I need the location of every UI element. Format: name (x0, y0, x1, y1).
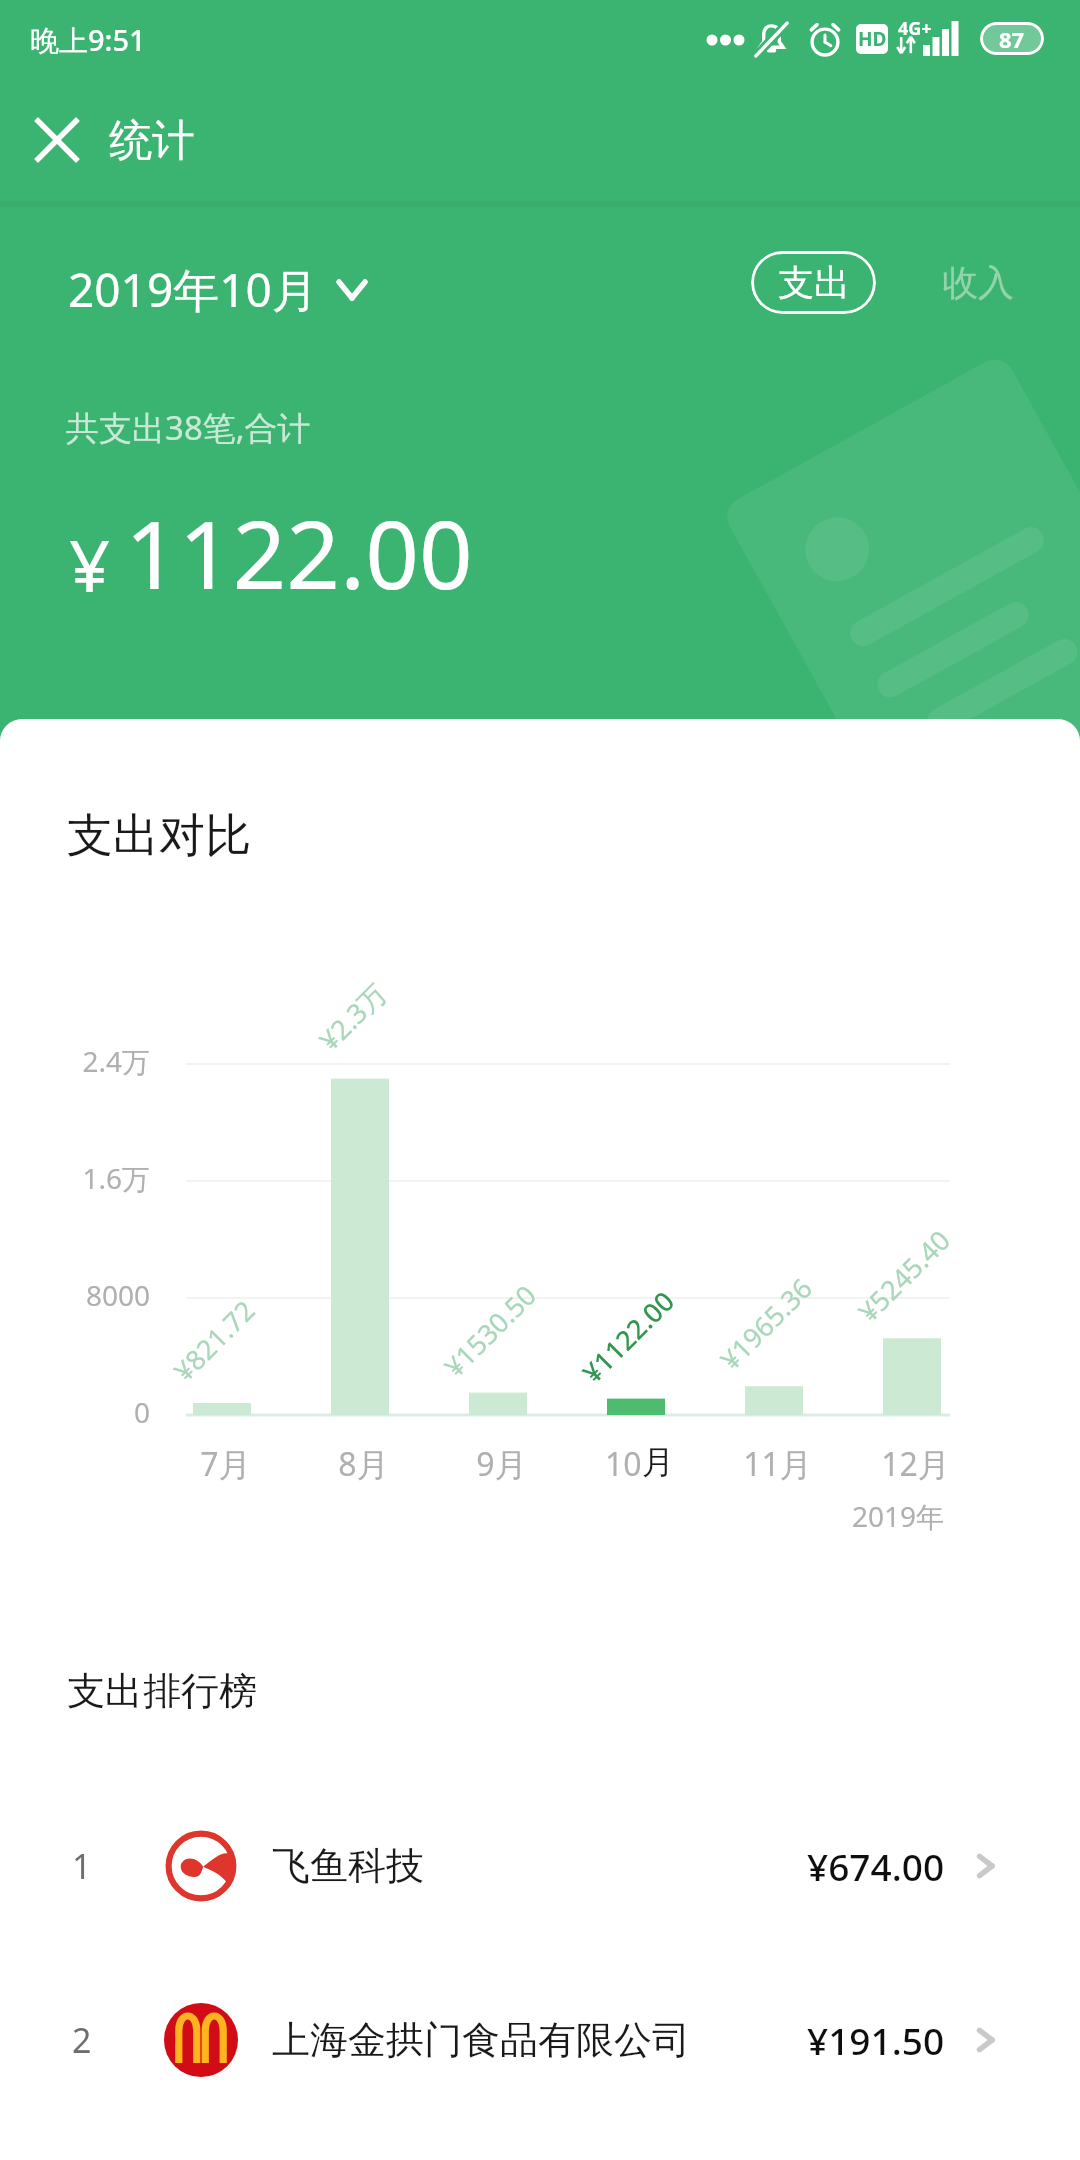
staticText: 87 (999, 24, 1025, 54)
staticText: 上海金拱门食品有限公司 (272, 2016, 690, 2064)
staticText: 8000 (85, 1276, 150, 1314)
staticText: 统计 (109, 114, 195, 168)
staticText: 2 (72, 2017, 92, 2063)
staticText: 共支出38笔,合计 (66, 405, 311, 450)
staticText: 飞鱼科技 (272, 1842, 424, 1890)
button[interactable]: 支出 (751, 251, 876, 314)
button[interactable]: 收入 (934, 251, 1022, 314)
staticText: ¥5245.40 (850, 1221, 958, 1330)
staticText: 11月 (743, 1442, 812, 1486)
staticText: 4G+ (898, 16, 932, 41)
staticText: ¥ (69, 515, 111, 613)
staticText: ¥1965.36 (712, 1269, 820, 1378)
staticText: 1 (72, 1843, 92, 1889)
button[interactable]: 2019年10月 (60, 252, 376, 327)
staticText: 2019年 (852, 1497, 945, 1535)
button[interactable]: Close (20, 103, 94, 177)
staticText: 支出排行榜 (67, 1667, 257, 1715)
staticText: ¥821.72 (166, 1292, 262, 1389)
staticText: 0 (133, 1393, 150, 1431)
staticText: 收入 (942, 260, 1014, 305)
staticText: 9月 (476, 1442, 527, 1486)
staticText: 8月 (338, 1442, 389, 1486)
staticText: HD (858, 26, 887, 52)
staticText: 7月 (200, 1442, 251, 1486)
staticText: ¥1122.00 (574, 1282, 682, 1391)
staticText: 12月 (881, 1442, 950, 1486)
button[interactable]: 上海金拱门食品有限公司 ¥191.50 (0, 1990, 1080, 2090)
staticText: 10 (605, 1442, 642, 1486)
staticText: 1.6万 (82, 1159, 150, 1197)
staticText: 晚上9:51 (30, 20, 146, 60)
staticText: 2.4万 (82, 1042, 150, 1080)
staticText: 支出对比 (67, 807, 251, 865)
staticText: 2019年10月 (68, 258, 318, 321)
staticText: ¥191.50 (807, 2015, 945, 2065)
staticText: 1122.00 (125, 489, 473, 617)
staticText: ¥1530.50 (436, 1276, 544, 1385)
staticText: ¥674.00 (807, 1841, 945, 1891)
staticText: ¥2.3万 (311, 975, 394, 1058)
button[interactable]: 飞鱼科技 ¥674.00 (0, 1816, 1080, 1916)
staticText: 月 (642, 1442, 674, 1482)
staticText: 支出 (778, 260, 850, 305)
